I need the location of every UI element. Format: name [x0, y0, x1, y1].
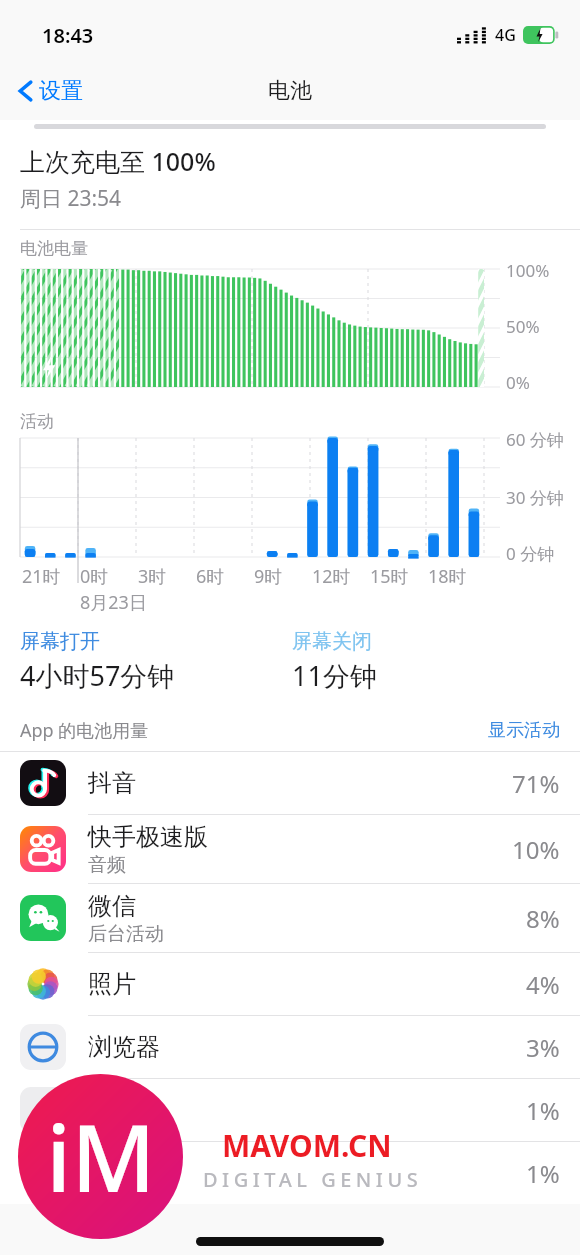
button[interactable]: 照片 [0, 953, 580, 1015]
staticText: 浏览器 [88, 1032, 160, 1062]
staticText: 音频 [88, 853, 126, 877]
button[interactable]: 1% [0, 1079, 580, 1141]
staticText: 1% [526, 1094, 560, 1127]
button[interactable]: 1% [0, 1142, 580, 1204]
staticText: 11分钟 [292, 657, 377, 694]
staticText: 照片 [88, 969, 136, 999]
staticText: App 的电池用量 [20, 718, 149, 743]
staticText: 快手极速版 [88, 822, 208, 852]
staticText: 4% [526, 968, 560, 1001]
staticText: 8月23日 [80, 590, 147, 615]
staticText: 屏幕打开 [20, 629, 100, 654]
button[interactable]: 设置 [0, 62, 580, 120]
staticText: 21时 [22, 564, 61, 589]
staticText: 显示活动 [488, 719, 560, 742]
staticText: DIGITAL GENIUS [203, 1166, 423, 1193]
staticText: 15时 [370, 564, 409, 589]
button[interactable]: 设置 [14, 73, 87, 109]
staticText: 100% [506, 259, 550, 282]
staticText: 屏幕关闭 [292, 629, 372, 654]
staticText: iM [46, 1094, 156, 1219]
staticText: 8% [526, 902, 560, 935]
staticText: 0% [506, 371, 530, 394]
staticText: 3时 [138, 564, 167, 589]
staticText: 60 分钟 [506, 428, 564, 451]
staticText: 30 分钟 [506, 486, 564, 509]
staticText: 活动 [20, 411, 54, 432]
button[interactable]: 显示活动 [488, 719, 560, 742]
staticText: 设置 [39, 77, 83, 105]
staticText: 50% [506, 315, 540, 338]
staticText: 0时 [80, 564, 109, 589]
staticText: 3% [526, 1031, 560, 1064]
button[interactable]: 抖音 [0, 752, 580, 814]
staticText: 4G [495, 24, 516, 46]
button[interactable]: 快手极速版 [0, 815, 580, 883]
staticText: 18:43 [42, 22, 94, 49]
staticText: 上次充电至 100% [20, 144, 216, 178]
staticText: MAVOM.CN [222, 1125, 392, 1166]
staticText: 后台活动 [88, 922, 164, 946]
staticText: 电池电量 [20, 238, 88, 259]
staticText: 9时 [254, 564, 283, 589]
staticText: 18时 [428, 564, 467, 589]
staticText: 4小时57分钟 [20, 657, 175, 694]
staticText: 12时 [312, 564, 351, 589]
staticText: 1% [526, 1157, 560, 1190]
staticText: 微信 [88, 891, 136, 921]
staticText: 71% [512, 767, 560, 800]
staticText: 电池 [268, 77, 312, 105]
button[interactable]: 浏览器 [0, 1016, 580, 1078]
staticText: 10% [512, 833, 560, 866]
staticText: 0 分钟 [506, 542, 555, 565]
staticText: 6时 [196, 564, 225, 589]
staticText: 抖音 [88, 768, 136, 798]
staticText: 周日 23:54 [20, 184, 122, 213]
button[interactable]: 微信 [0, 884, 580, 952]
